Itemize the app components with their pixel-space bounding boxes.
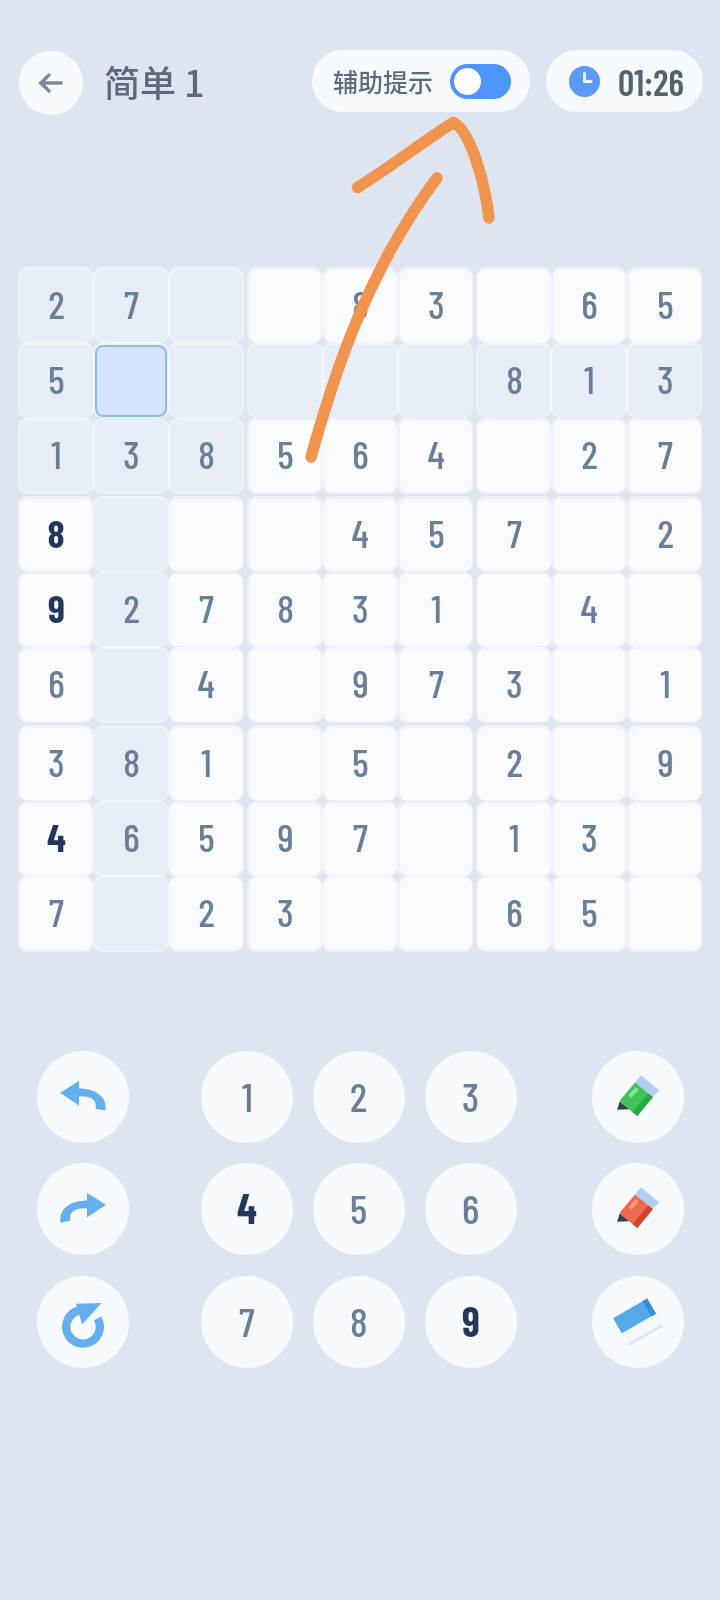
button[interactable]: 2 [553, 420, 625, 492]
button[interactable] [95, 345, 167, 417]
button[interactable]: 2 [629, 499, 701, 571]
button[interactable]: 2 [20, 270, 92, 342]
button[interactable] [324, 345, 396, 417]
button[interactable]: Eraser [592, 1276, 684, 1368]
button[interactable]: 1 [478, 803, 550, 875]
button[interactable]: 3 [400, 270, 472, 342]
button[interactable]: 1 [170, 728, 242, 800]
button[interactable]: 8 [20, 499, 92, 571]
button[interactable]: 2 [170, 878, 242, 950]
button[interactable]: 7 [95, 270, 167, 342]
button[interactable]: Redo [37, 1163, 129, 1255]
button[interactable]: 6 [324, 420, 396, 492]
button[interactable]: 1 [553, 345, 625, 417]
button[interactable] [249, 345, 321, 417]
button[interactable]: 8 [313, 1276, 405, 1368]
button[interactable]: 4 [20, 803, 92, 875]
button[interactable]: 8 [478, 345, 550, 417]
button[interactable]: 9 [629, 728, 701, 800]
button[interactable]: 7 [400, 649, 472, 721]
button[interactable]: 3 [553, 803, 625, 875]
button[interactable]: 4 [324, 499, 396, 571]
button[interactable]: 3 [95, 420, 167, 492]
button[interactable]: 4 [553, 574, 625, 646]
button[interactable]: 9 [249, 803, 321, 875]
button[interactable]: 3 [324, 574, 396, 646]
button[interactable]: 6 [20, 649, 92, 721]
button[interactable]: 7 [629, 420, 701, 492]
button[interactable]: 3 [425, 1051, 517, 1143]
button[interactable]: Pencil notes [592, 1051, 684, 1143]
button[interactable]: 8 [249, 574, 321, 646]
button[interactable]: 4 [170, 649, 242, 721]
button[interactable]: 7 [478, 499, 550, 571]
button[interactable]: 5 [249, 420, 321, 492]
button[interactable]: 5 [170, 803, 242, 875]
button[interactable]: Restart [37, 1276, 129, 1368]
button[interactable]: 1 [201, 1051, 293, 1143]
button[interactable]: 9 [20, 574, 92, 646]
button[interactable]: 3 [629, 345, 701, 417]
button[interactable]: 5 [629, 270, 701, 342]
button[interactable]: 3 [478, 649, 550, 721]
button[interactable]: 8 [95, 728, 167, 800]
button[interactable]: Undo [37, 1051, 129, 1143]
button[interactable]: 1 [629, 649, 701, 721]
button[interactable]: 7 [170, 574, 242, 646]
button[interactable]: 7 [201, 1276, 293, 1368]
button[interactable]: 8 [324, 270, 396, 342]
button[interactable]: 2 [313, 1051, 405, 1143]
button[interactable]: 5 [553, 878, 625, 950]
button[interactable]: 4 [201, 1163, 293, 1255]
button[interactable]: 7 [324, 803, 396, 875]
button[interactable]: 2 [95, 574, 167, 646]
button[interactable]: 8 [170, 420, 242, 492]
button[interactable]: 9 [425, 1276, 517, 1368]
button[interactable]: 6 [553, 270, 625, 342]
button[interactable]: 01:26 [546, 50, 703, 112]
button[interactable]: 9 [324, 649, 396, 721]
button[interactable]: 6 [95, 803, 167, 875]
button[interactable]: 5 [400, 499, 472, 571]
button[interactable]: 5 [20, 345, 92, 417]
button[interactable]: 7 [20, 878, 92, 950]
button[interactable]: 4 [400, 420, 472, 492]
button[interactable]: 5 [313, 1163, 405, 1255]
button[interactable]: 5 [324, 728, 396, 800]
button[interactable]: Back [19, 51, 83, 115]
staticText: 3 [428, 280, 445, 327]
button[interactable]: 3 [249, 878, 321, 950]
button[interactable]: Erase mistakes [592, 1163, 684, 1255]
button[interactable]: 辅助提示 [312, 50, 530, 112]
button[interactable]: 2 [478, 728, 550, 800]
button[interactable]: 1 [20, 420, 92, 492]
button[interactable]: 6 [478, 878, 550, 950]
button[interactable]: 1 [400, 574, 472, 646]
button[interactable]: 3 [20, 728, 92, 800]
button[interactable]: 6 [425, 1163, 517, 1255]
